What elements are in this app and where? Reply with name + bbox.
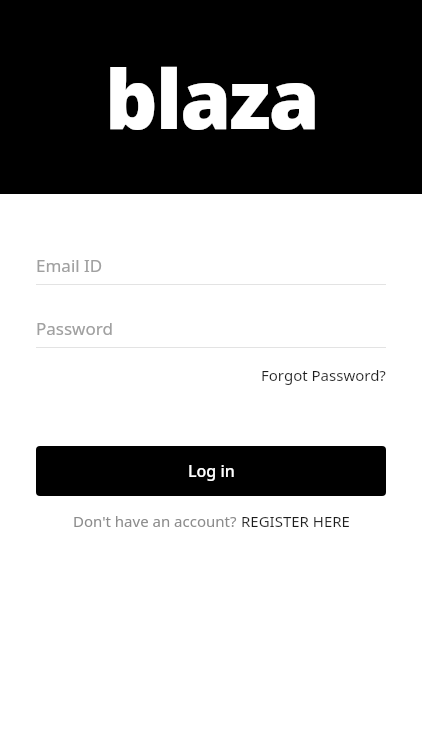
staticText: blaza xyxy=(105,41,318,153)
staticText: Don't have an account? xyxy=(73,511,241,531)
staticText: Forgot Password? xyxy=(261,365,386,385)
button[interactable]: Log in xyxy=(36,446,386,496)
staticText: Log in xyxy=(188,460,235,482)
button[interactable]: Email ID xyxy=(36,254,386,285)
button[interactable]: REGISTER HERE xyxy=(241,508,350,534)
staticText: Email ID xyxy=(36,254,103,277)
staticText: REGISTER HERE xyxy=(241,511,350,531)
button[interactable]: Password xyxy=(36,317,386,348)
staticText: Password xyxy=(36,317,113,340)
button[interactable]: Forgot Password? xyxy=(261,362,386,388)
